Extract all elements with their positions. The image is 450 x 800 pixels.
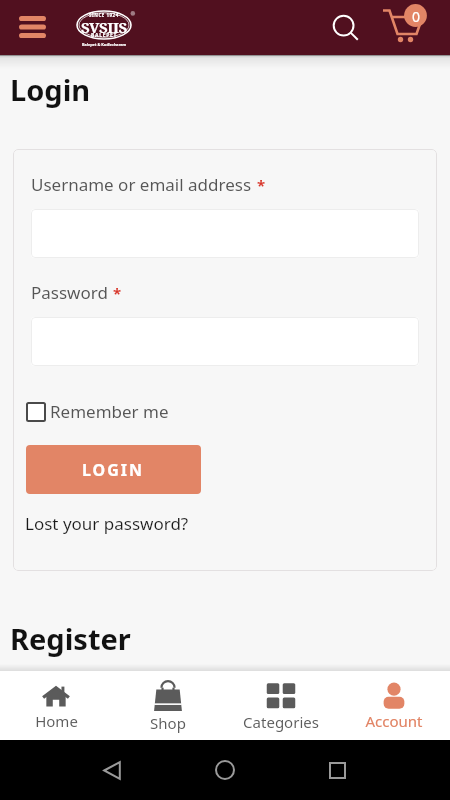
- staticText: Home: [35, 711, 78, 731]
- button[interactable]: Text field: [31, 209, 419, 258]
- staticText: Password: [31, 281, 108, 304]
- button[interactable]: Recent apps: [315, 748, 359, 792]
- button[interactable]: Remember me: [26, 400, 169, 423]
- button[interactable]: Cart, 0 items: [381, 3, 429, 45]
- staticText: Login: [10, 70, 91, 109]
- button[interactable]: Categories: [224, 671, 337, 740]
- staticText: Balepet & Kadlecharam: [82, 42, 127, 47]
- staticText: Shop: [150, 713, 186, 733]
- button[interactable]: Text field: [31, 317, 419, 366]
- staticText: *: [113, 283, 122, 303]
- button[interactable]: Open menu: [10, 7, 55, 47]
- staticText: 0: [412, 7, 421, 25]
- button[interactable]: Shop: [112, 671, 224, 740]
- staticText: BALEPET: [91, 32, 118, 39]
- button[interactable]: Home: [0, 671, 112, 740]
- staticText: Remember me: [50, 400, 169, 423]
- button[interactable]: Lost your password?: [25, 512, 189, 535]
- staticText: SVSIIS: [81, 17, 127, 37]
- button[interactable]: Back: [90, 748, 134, 792]
- staticText: Register: [10, 619, 131, 658]
- button[interactable]: Home: [203, 748, 247, 792]
- button[interactable]: LOGIN: [26, 445, 201, 494]
- button[interactable]: Search: [326, 7, 366, 47]
- staticText: Username or email address: [31, 173, 252, 196]
- button[interactable]: Account: [337, 671, 450, 740]
- staticText: LOGIN: [82, 459, 145, 481]
- staticText: Account: [365, 711, 423, 731]
- staticText: Categories: [243, 712, 319, 732]
- staticText: *: [257, 175, 266, 195]
- staticText: SINCE 1924: [89, 12, 119, 18]
